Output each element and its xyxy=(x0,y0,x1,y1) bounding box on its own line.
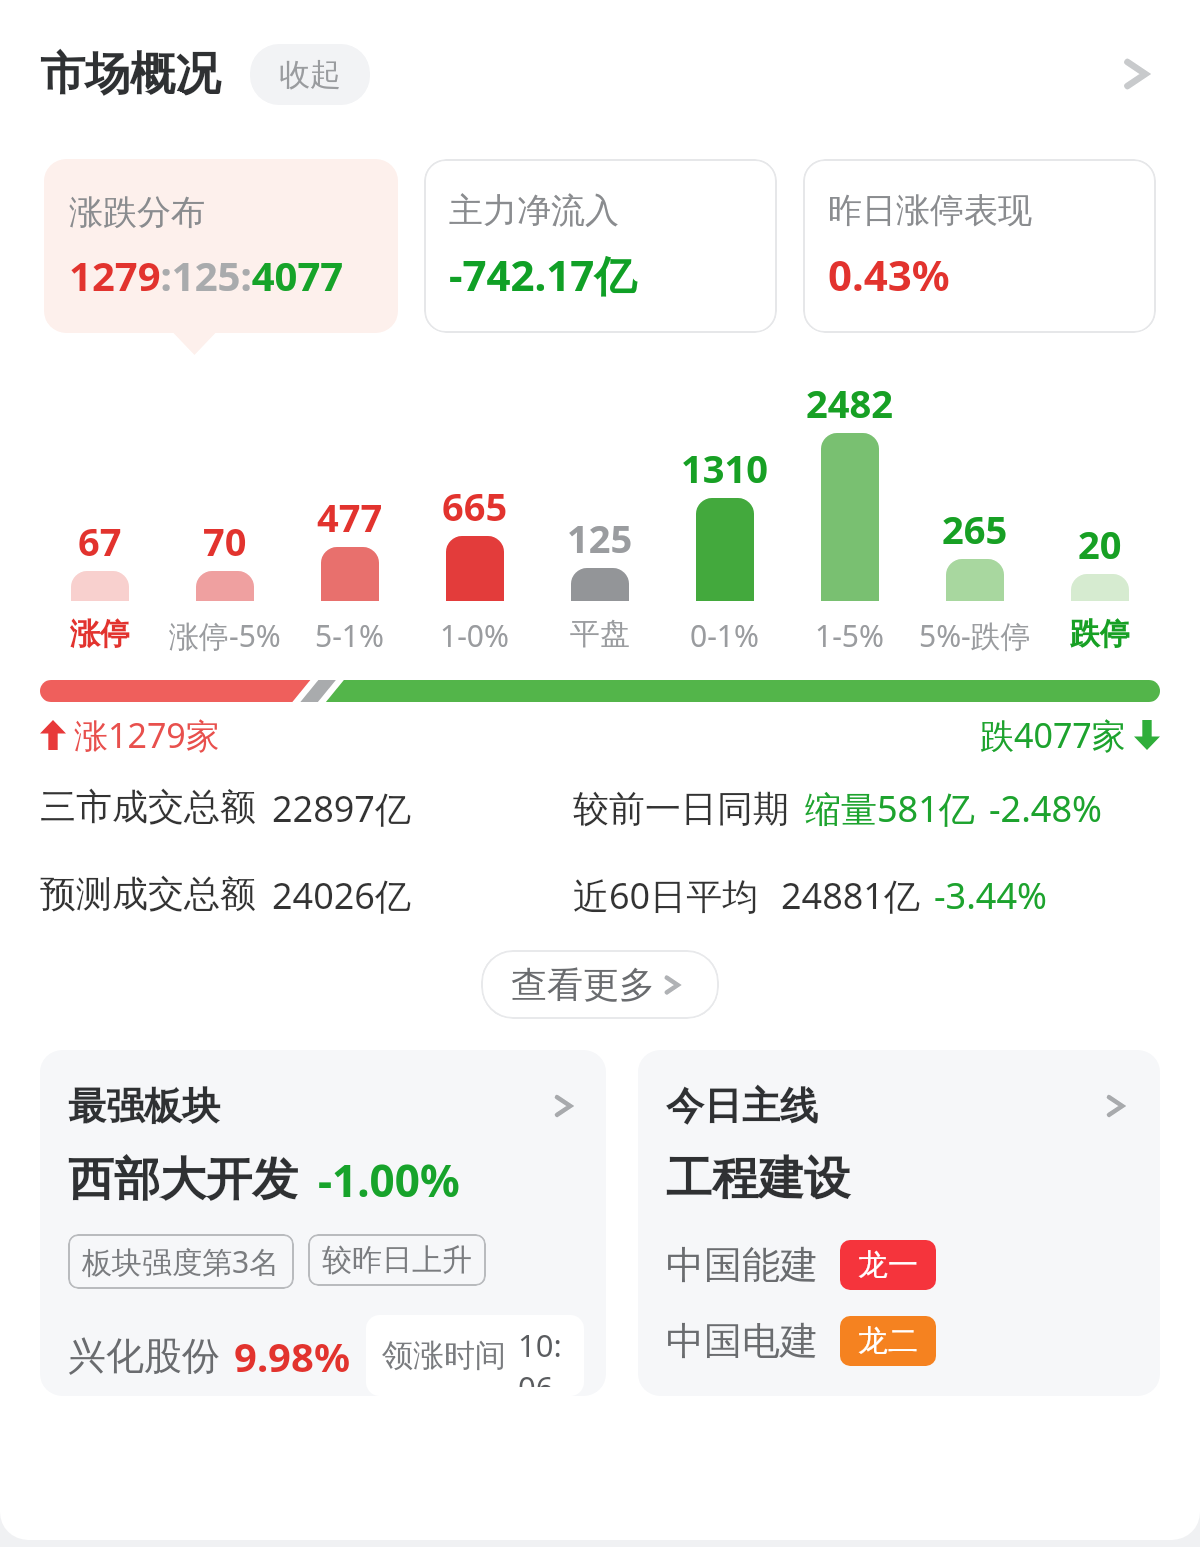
staticText: 板块强度第3名 xyxy=(82,1241,280,1282)
staticText: 市场概况 xyxy=(40,46,220,103)
staticText: 1310 xyxy=(681,442,768,494)
staticText: 较前一日同期 xyxy=(573,786,789,831)
button[interactable]: 查看更多 xyxy=(481,950,719,1019)
other: 今日主线详情 xyxy=(1102,1089,1136,1123)
staticText: 平盘 xyxy=(570,615,630,653)
staticText: 265 xyxy=(942,503,1008,555)
staticText: 67 xyxy=(78,515,122,567)
staticText: 10:06 xyxy=(518,1324,568,1387)
staticText: 跌停 xyxy=(1070,615,1130,653)
staticText: 昨日涨停表现 xyxy=(828,189,1032,232)
staticText: 24026亿 xyxy=(272,871,411,920)
staticText: 中国电建 xyxy=(666,1317,818,1365)
staticText: 1279:125:4077 xyxy=(69,248,344,302)
staticText: 兴化股份 xyxy=(68,1332,220,1380)
staticText: 477 xyxy=(317,491,383,543)
staticText: 西部大开发 xyxy=(68,1151,298,1209)
staticText: 5%-跌停 xyxy=(919,615,1031,656)
staticText: -1.00% xyxy=(318,1150,460,1210)
button[interactable]: 主力净流入 xyxy=(424,159,777,333)
staticText: 收起 xyxy=(279,55,341,94)
staticText: 20 xyxy=(1078,518,1122,570)
staticText: 24881亿 xyxy=(781,871,920,920)
staticText: 最强板块 xyxy=(68,1082,220,1130)
staticText: 龙二 xyxy=(858,1322,918,1360)
staticText: 9.98% xyxy=(234,1329,350,1383)
staticText: 涨停-5% xyxy=(169,615,281,656)
button[interactable]: 今日主线 xyxy=(638,1050,1160,1396)
button[interactable]: 昨日涨停表现 xyxy=(803,159,1156,333)
staticText: 预测成交总额 xyxy=(40,871,256,916)
staticText: 22897亿 xyxy=(272,784,411,833)
staticText: 缩量581亿 xyxy=(805,784,975,833)
staticText: 665 xyxy=(442,480,508,532)
other: 最强板块详情 xyxy=(550,1089,584,1123)
staticText: 125 xyxy=(567,512,633,564)
staticText: 领涨时间 xyxy=(382,1336,506,1375)
staticText: 1-5% xyxy=(815,615,884,656)
staticText: 今日主线 xyxy=(666,1082,818,1130)
other: 查看更多 xyxy=(661,971,689,999)
staticText: 涨1279家 xyxy=(74,712,220,758)
staticText: -2.48% xyxy=(989,784,1102,833)
staticText: 2482 xyxy=(806,377,893,429)
staticText: 三市成交总额 xyxy=(40,784,256,829)
other: 展开更多 xyxy=(1118,51,1164,97)
staticText: 涨停 xyxy=(70,615,130,653)
staticText: 近60日平均 xyxy=(573,871,759,920)
button[interactable]: 市场概况 xyxy=(0,0,1200,148)
staticText: 查看更多 xyxy=(511,962,655,1007)
staticText: 中国能建 xyxy=(666,1241,818,1289)
staticText: 工程建设 xyxy=(666,1150,850,1208)
staticText: 涨跌分布 xyxy=(69,191,205,234)
staticText: 龙一 xyxy=(858,1246,918,1284)
staticText: 较昨日上升 xyxy=(322,1241,472,1279)
staticText: 5-1% xyxy=(315,615,384,656)
staticText: 跌4077家 xyxy=(980,712,1126,758)
button[interactable]: 最强板块 xyxy=(40,1050,606,1396)
staticText: -742.17亿 xyxy=(449,246,637,303)
staticText: 0.43% xyxy=(828,246,950,303)
button[interactable]: 涨跌分布 xyxy=(44,159,398,333)
staticText: 主力净流入 xyxy=(449,189,619,232)
staticText: 0-1% xyxy=(690,615,759,656)
button[interactable]: 板块强度第3名 xyxy=(68,1234,294,1289)
staticText: -3.44% xyxy=(934,871,1047,920)
staticText: 1-0% xyxy=(440,615,509,656)
button[interactable]: 收起 xyxy=(250,44,370,105)
button[interactable]: 较昨日上升 xyxy=(308,1234,486,1286)
staticText: 70 xyxy=(203,515,247,567)
